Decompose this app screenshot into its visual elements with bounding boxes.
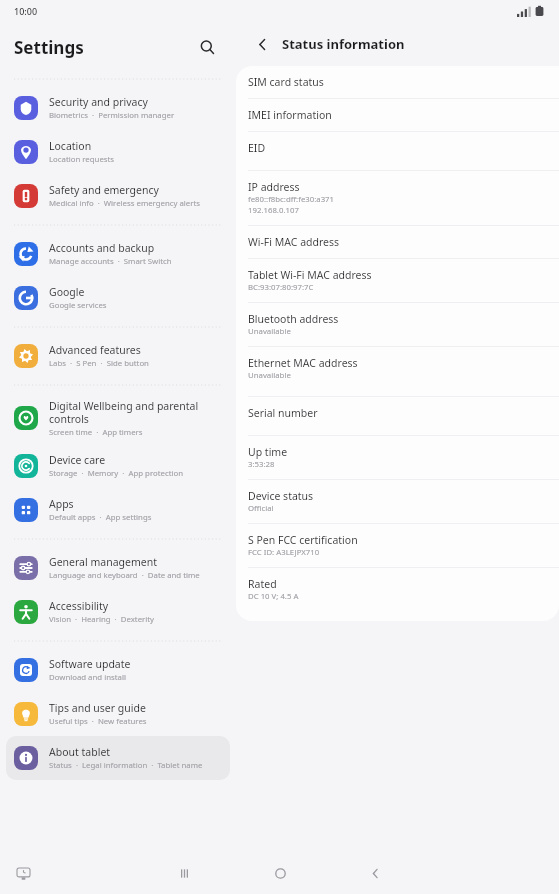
button[interactable]: IP address [236,171,559,225]
button[interactable]: Digital Wellbeing and parental controls [6,392,230,444]
staticText: Vision · Hearing · Dexterity [49,614,155,625]
staticText: IP address [248,180,300,194]
staticText: Tablet Wi-Fi MAC address [248,268,372,282]
staticText: Google [49,285,85,299]
staticText: Google services [49,300,107,311]
staticText: Medical info · Wireless emergency alerts [49,198,201,209]
button[interactable]: Keyboard [10,860,36,886]
button[interactable]: Wi-Fi MAC address [236,226,559,258]
button[interactable]: Accessibility [6,590,230,634]
button[interactable]: Security and privacy [6,86,230,130]
staticText: Up time [248,445,288,459]
staticText: Status · Legal information · Tablet name [49,760,203,771]
staticText: Bluetooth address [248,312,339,326]
button[interactable]: General management [6,546,230,590]
button[interactable]: S Pen FCC certification [236,524,559,567]
staticText: IMEI information [248,108,332,122]
button[interactable]: Location [6,130,230,174]
staticText: Software update [49,657,131,671]
staticText: SIM card status [248,75,324,89]
staticText: Manage accounts · Smart Switch [49,256,172,267]
staticText: Storage · Memory · App protection [49,468,184,479]
staticText: Screen time · App timers [49,427,143,438]
button[interactable]: Back [248,30,276,58]
staticText: FCC ID: A3LEJPX710 [248,547,320,558]
staticText: Useful tips · New features [49,716,147,727]
button[interactable]: Software update [6,648,230,692]
staticText: Location [49,139,92,153]
staticText: Security and privacy [49,95,148,109]
staticText: Wi-Fi MAC address [248,235,340,249]
staticText: Unavailable [248,370,291,381]
staticText: Device care [49,453,106,467]
staticText: 192.168.0.107 [248,205,299,216]
staticText: Ethernet MAC address [248,356,358,370]
staticText: Device status [248,489,314,503]
button[interactable]: Back [358,856,392,890]
staticText: Language and keyboard · Date and time [49,570,200,581]
staticText: Download and install [49,672,126,683]
staticText: Official [248,503,274,514]
button[interactable]: Advanced features [6,334,230,378]
staticText: Unavailable [248,326,291,337]
button[interactable]: About tablet [6,736,230,780]
staticText: BC:93:07:80:97:7C [248,282,314,293]
staticText: About tablet [49,745,111,759]
button[interactable]: Rated [236,568,559,611]
button[interactable]: Bluetooth address [236,303,559,346]
staticText: 3:53:28 [248,459,275,470]
button[interactable]: Device status [236,480,559,523]
button[interactable]: Tips and user guide [6,692,230,736]
button[interactable]: EID [236,132,559,164]
button[interactable]: Up time [236,436,559,479]
button[interactable]: Serial number [236,397,559,429]
button[interactable]: Search [192,32,222,62]
button[interactable]: Tablet Wi-Fi MAC address [236,259,559,302]
staticText: Labs · S Pen · Side button [49,358,149,369]
button[interactable]: Device care [6,444,230,488]
button[interactable]: Google [6,276,230,320]
button[interactable]: IMEI information [236,99,559,131]
button[interactable]: Accounts and backup [6,232,230,276]
button[interactable]: Home [263,856,297,890]
staticText: Safety and emergency [49,183,159,197]
staticText: Serial number [248,406,318,420]
staticText: Apps [49,497,74,511]
staticText: Biometrics · Permission manager [49,110,175,121]
staticText: fe80::f8bc:dff:fe30:a371 [248,194,335,205]
staticText: Digital Wellbeing and parental controls [49,399,199,426]
button[interactable]: Recents [167,856,201,890]
staticText: Advanced features [49,343,141,357]
staticText: 10:00 [14,5,38,17]
staticText: Default apps · App settings [49,512,152,523]
staticText: DC 10 V; 4.5 A [248,591,299,602]
staticText: S Pen FCC certification [248,533,358,547]
staticText: Tips and user guide [49,701,146,715]
staticText: Accounts and backup [49,241,155,255]
staticText: Status information [282,35,405,53]
button[interactable]: Ethernet MAC address [236,347,559,390]
staticText: EID [248,141,266,155]
button[interactable]: SIM card status [236,66,559,98]
staticText: Location requests [49,154,115,165]
staticText: Accessibility [49,599,109,613]
staticText: Rated [248,577,277,591]
staticText: General management [49,555,157,569]
button[interactable]: Apps [6,488,230,532]
button[interactable]: Safety and emergency [6,174,230,218]
staticText: Settings [14,36,84,59]
